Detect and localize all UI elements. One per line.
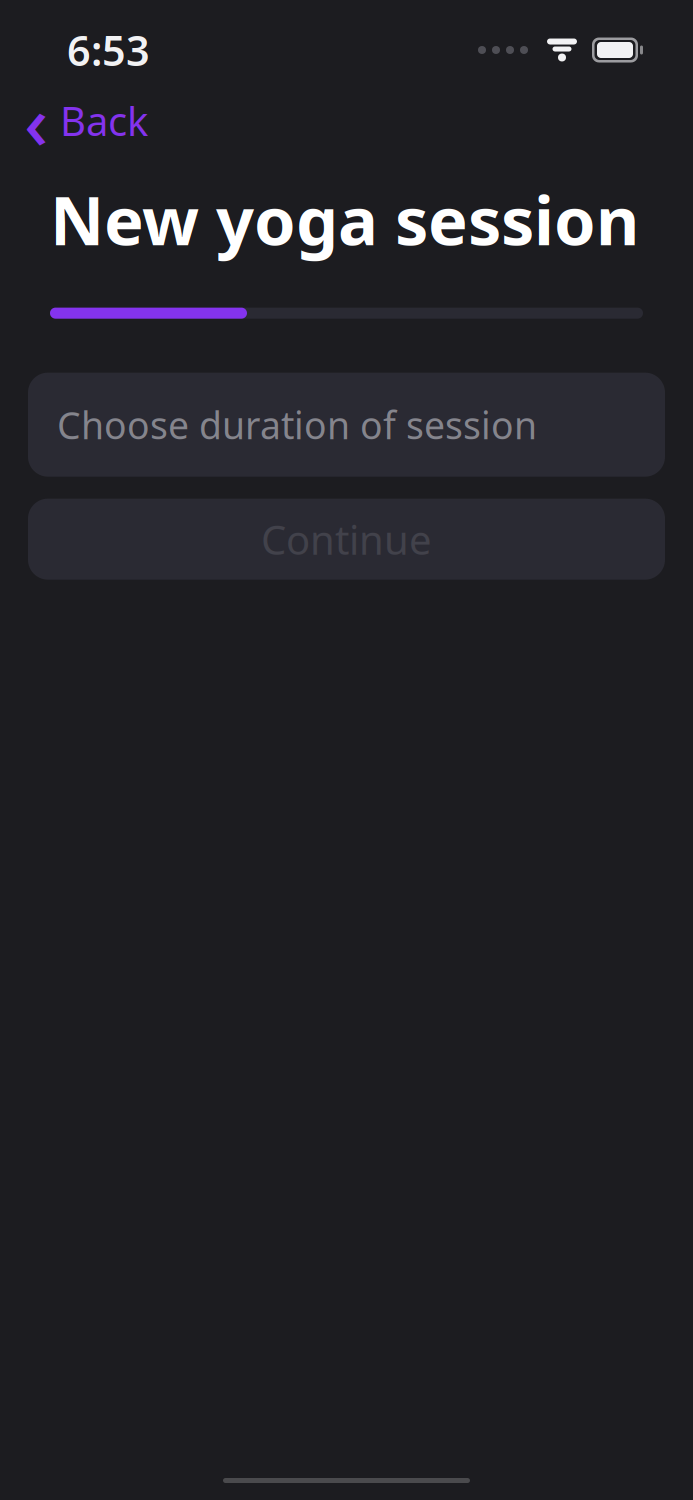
staticText: Choose duration of session (57, 400, 537, 449)
staticText: New yoga session (50, 175, 639, 264)
button[interactable]: Back (6, 86, 166, 155)
staticText: ‹ (24, 71, 48, 170)
staticText: Continue (261, 513, 432, 566)
button[interactable]: Choose duration of session (28, 373, 665, 477)
button[interactable]: Continue (28, 499, 665, 580)
staticText: Back (60, 94, 148, 147)
staticText: 6:53 (67, 23, 150, 77)
